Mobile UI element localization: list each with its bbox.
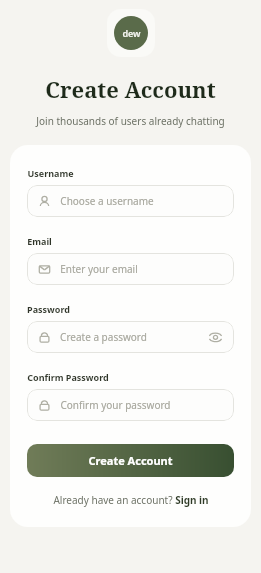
button[interactable]: Already have an account? Sign in (27, 493, 234, 507)
button[interactable]: Show password (207, 329, 223, 345)
button[interactable]: Create Account (27, 444, 234, 477)
staticText: Join thousands of users already chatting (36, 114, 225, 128)
staticText: Password (27, 303, 70, 315)
staticText: Create Account (88, 453, 173, 468)
staticText: Create Account (45, 74, 216, 104)
button[interactable]: Choose a username (27, 185, 234, 217)
staticText: dew (122, 27, 141, 39)
button[interactable]: Create a password (27, 321, 234, 353)
staticText: Enter your email (60, 262, 138, 276)
button[interactable]: Enter your email (27, 253, 234, 285)
staticText: Confirm your password (60, 398, 171, 412)
staticText: Create a password (60, 330, 147, 344)
staticText: Email (27, 235, 52, 247)
button[interactable]: Confirm your password (27, 389, 234, 421)
staticText: Username (27, 167, 74, 179)
staticText: Confirm Password (27, 371, 109, 383)
staticText: Choose a username (60, 194, 154, 208)
staticText: Already have an account? Sign in (53, 493, 209, 507)
